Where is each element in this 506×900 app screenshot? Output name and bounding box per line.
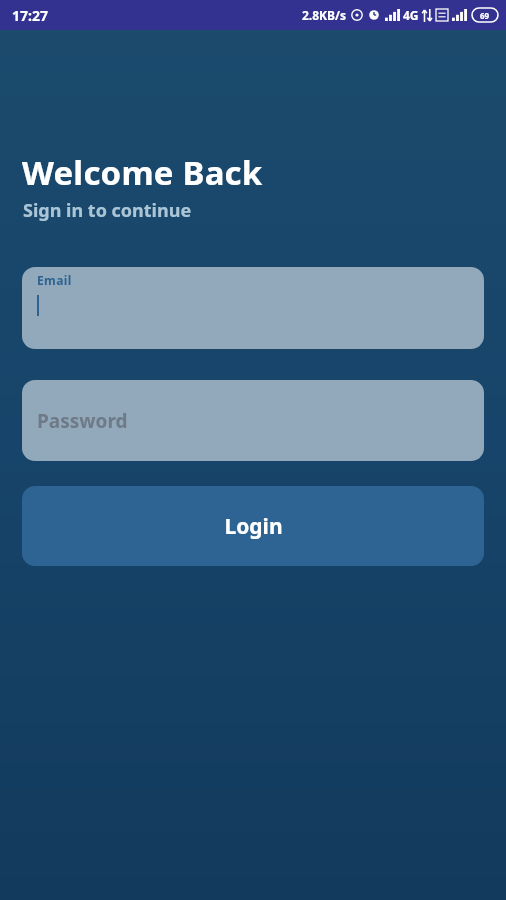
staticText: Sign in to continue [23, 198, 192, 223]
button[interactable]: Email [22, 267, 484, 349]
staticText: 69 [480, 10, 490, 21]
staticText: 17:27 [12, 6, 48, 25]
staticText: 2.8KB/s [302, 7, 347, 23]
staticText: Email [37, 272, 72, 288]
staticText: Login [224, 512, 283, 541]
button[interactable]: Password [22, 380, 484, 461]
staticText: 4G [403, 7, 419, 23]
staticText: Password [37, 408, 128, 434]
staticText: Welcome Back [22, 150, 263, 195]
button[interactable]: Login [22, 486, 484, 566]
